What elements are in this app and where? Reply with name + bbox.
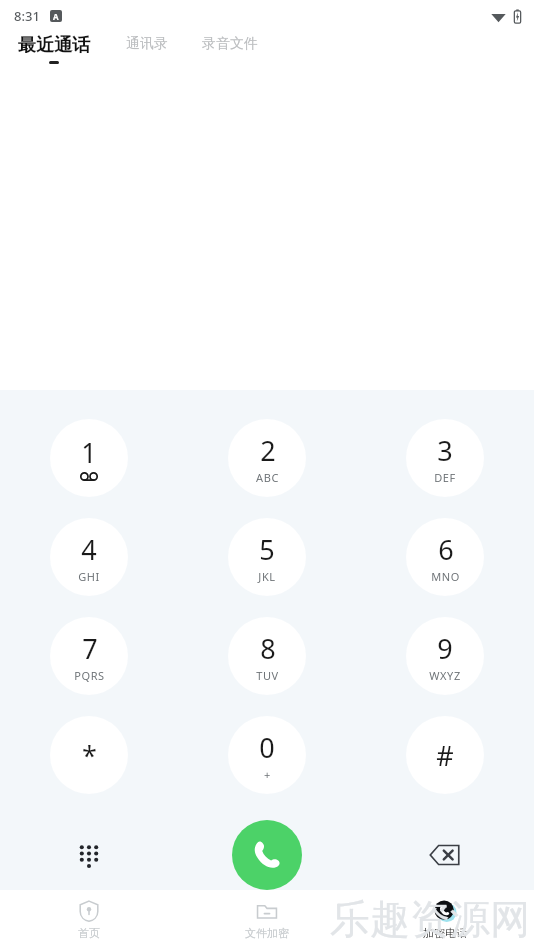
button[interactable]: 4 bbox=[50, 518, 128, 596]
button[interactable]: 3 bbox=[406, 419, 484, 497]
button[interactable]: Delete bbox=[421, 831, 469, 879]
staticText: 0 bbox=[259, 729, 275, 766]
button[interactable]: 最近通话 bbox=[16, 32, 92, 66]
staticText: 最近通话 bbox=[18, 34, 90, 57]
button[interactable]: 首页 bbox=[0, 890, 178, 950]
button[interactable]: 2 bbox=[228, 419, 306, 497]
button[interactable]: 6 bbox=[406, 518, 484, 596]
staticText: PQRS bbox=[74, 668, 105, 683]
button[interactable]: 加密电话 bbox=[356, 890, 534, 950]
button[interactable]: 文件加密 bbox=[178, 890, 356, 950]
staticText: 8 bbox=[260, 630, 276, 667]
staticText: JKL bbox=[258, 569, 276, 584]
staticText: ABC bbox=[256, 470, 279, 485]
staticText: DEF bbox=[434, 470, 456, 485]
staticText: 8:31 bbox=[14, 7, 40, 25]
button[interactable]: 1 bbox=[50, 419, 128, 497]
button[interactable]: 5 bbox=[228, 518, 306, 596]
staticText: 首页 bbox=[78, 926, 100, 940]
staticText: 2 bbox=[260, 432, 276, 469]
staticText: 加密电话 bbox=[423, 926, 467, 940]
staticText: 4 bbox=[81, 531, 97, 568]
staticText: MNO bbox=[431, 569, 460, 584]
staticText: 3 bbox=[437, 432, 453, 469]
staticText: 文件加密 bbox=[245, 926, 289, 940]
button[interactable]: 8 bbox=[228, 617, 306, 695]
staticText: 7 bbox=[82, 630, 98, 667]
button[interactable]: Call bbox=[232, 820, 302, 890]
button[interactable]: # bbox=[406, 716, 484, 794]
staticText: * bbox=[82, 737, 97, 774]
button[interactable]: 0 bbox=[228, 716, 306, 794]
staticText: 9 bbox=[437, 630, 453, 667]
button[interactable]: 通讯录 bbox=[122, 32, 172, 56]
button[interactable]: * bbox=[50, 716, 128, 794]
staticText: # bbox=[436, 737, 454, 774]
staticText: 乐趣资源网 bbox=[330, 894, 530, 944]
staticText: GHI bbox=[78, 569, 100, 584]
staticText: + bbox=[264, 767, 271, 782]
staticText: WXYZ bbox=[429, 668, 461, 683]
staticText: TUV bbox=[256, 668, 279, 683]
button[interactable]: 录音文件 bbox=[198, 32, 262, 56]
staticText: 1 bbox=[81, 434, 97, 471]
button[interactable]: 9 bbox=[406, 617, 484, 695]
staticText: 6 bbox=[438, 531, 454, 568]
button[interactable]: Keypad bbox=[65, 831, 113, 879]
button[interactable]: 7 bbox=[50, 617, 128, 695]
staticText: A bbox=[53, 11, 59, 22]
staticText: 5 bbox=[259, 531, 275, 568]
